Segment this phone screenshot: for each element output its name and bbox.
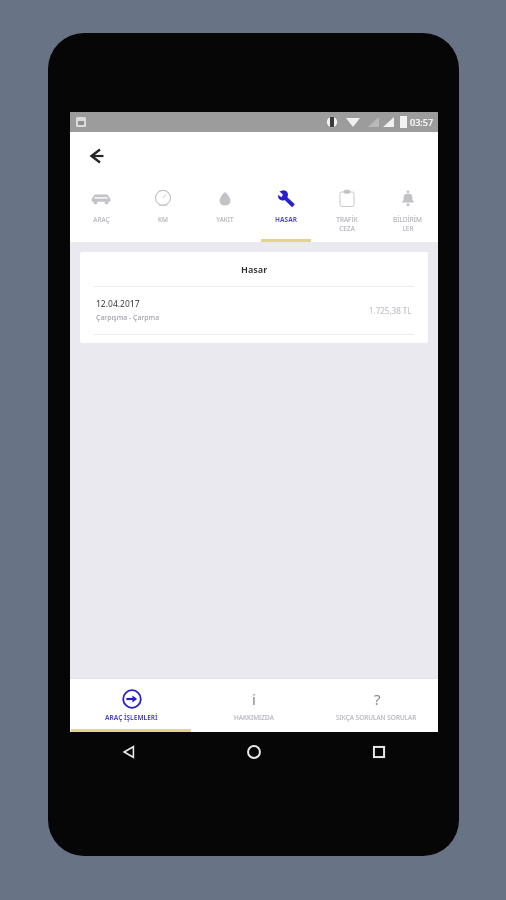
staticText: SIKÇA SORULAN SORULAR bbox=[336, 713, 417, 722]
staticText: 12.04.2017 bbox=[96, 298, 140, 310]
button[interactable]: YAKIT bbox=[194, 180, 255, 242]
staticText: BİLDİRİM bbox=[393, 215, 422, 224]
staticText: 03:57 bbox=[410, 116, 434, 128]
staticText: Çarpışma - Çarpma bbox=[96, 313, 160, 323]
button[interactable]: Back bbox=[118, 741, 140, 763]
staticText: TRAFİK bbox=[336, 215, 358, 224]
button[interactable]: Recents bbox=[368, 741, 390, 763]
staticText: HASAR bbox=[275, 215, 297, 224]
staticText: Hasar bbox=[241, 263, 268, 275]
staticText: CEZA bbox=[339, 224, 355, 233]
button[interactable]: Hasar bbox=[80, 252, 428, 343]
staticText: i bbox=[252, 689, 256, 709]
staticText: ? bbox=[374, 689, 381, 709]
staticText: ARAÇ İŞLEMLERİ bbox=[105, 713, 158, 722]
button[interactable]: Home bbox=[243, 741, 265, 763]
button[interactable]: ARAÇ bbox=[70, 180, 132, 242]
button[interactable]: ? bbox=[315, 678, 438, 732]
staticText: HAKKIMIZDA bbox=[234, 713, 274, 722]
button[interactable]: Back bbox=[78, 138, 114, 174]
button[interactable]: i bbox=[192, 678, 315, 732]
staticText: YAKIT bbox=[216, 215, 234, 224]
button[interactable]: TRAFİK bbox=[316, 180, 377, 242]
staticText: 1.725,38 TL bbox=[369, 305, 412, 316]
button[interactable]: KM bbox=[132, 180, 194, 242]
staticText: ARAÇ bbox=[93, 215, 110, 224]
button[interactable]: BİLDİRİM bbox=[377, 180, 438, 242]
button[interactable]: ARAÇ İŞLEMLERİ bbox=[70, 678, 192, 732]
staticText: LER bbox=[402, 224, 414, 233]
button[interactable]: HASAR bbox=[255, 180, 316, 242]
staticText: KM bbox=[158, 215, 168, 224]
